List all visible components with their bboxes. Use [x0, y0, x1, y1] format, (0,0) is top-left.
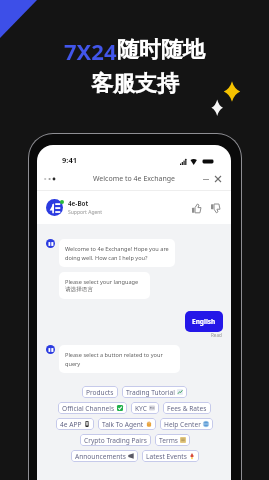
staticText: Help Center — [164, 420, 201, 429]
button[interactable]: Official Channels — [58, 402, 127, 414]
staticText: Terms — [159, 436, 178, 445]
button[interactable]: Crypto Trading Pairs — [80, 434, 151, 446]
staticText: Official Channels — [62, 404, 115, 413]
button[interactable]: Trading Tutorial — [122, 386, 187, 398]
staticText: Talk To Agent — [102, 420, 144, 429]
button[interactable]: Dislike — [208, 201, 222, 215]
staticText: 随时随地 — [117, 36, 205, 64]
button[interactable]: Help Center — [160, 418, 213, 430]
button[interactable]: Latest Events — [142, 450, 199, 462]
staticText: Support Agent — [68, 209, 103, 216]
button[interactable]: Terms — [155, 434, 190, 446]
staticText: 4e-Bot — [68, 199, 89, 208]
staticText: 4e APP — [60, 420, 82, 429]
staticText: 7X24 — [64, 36, 117, 66]
staticText: Announcements — [75, 452, 126, 461]
button[interactable]: More options — [44, 172, 58, 186]
button[interactable]: Talk To Agent — [98, 418, 156, 430]
button[interactable]: English — [185, 311, 223, 332]
staticText: Welcome to 4e Exchange! Hope you are doi… — [65, 245, 169, 261]
staticText: Please select your language — [65, 278, 139, 286]
staticText: Please select a button related to your q… — [65, 351, 174, 367]
button[interactable]: Minimize — [200, 172, 212, 186]
staticText: 请选择语言 — [65, 286, 93, 293]
button[interactable]: Fees & Rates — [163, 402, 211, 414]
staticText: Welcome to 4e Exchange — [93, 174, 176, 184]
staticText: English — [192, 317, 216, 326]
button[interactable]: 4e APP — [56, 418, 94, 430]
staticText: Fees & Rates — [167, 404, 207, 413]
button[interactable]: Products — [82, 386, 118, 398]
button[interactable]: Like — [189, 201, 203, 215]
staticText: KYC — [135, 404, 147, 413]
button[interactable]: KYC — [131, 402, 159, 414]
staticText: 客服支持 — [91, 70, 179, 98]
staticText: 9:41 — [62, 155, 77, 165]
staticText: Read — [211, 332, 222, 338]
staticText: Products — [86, 388, 114, 397]
button[interactable]: Announcements — [71, 450, 138, 462]
staticText: Crypto Trading Pairs — [84, 436, 147, 445]
staticText: Trading Tutorial — [126, 388, 175, 397]
staticText: Latest Events — [146, 452, 187, 461]
button[interactable]: Close — [212, 172, 224, 186]
